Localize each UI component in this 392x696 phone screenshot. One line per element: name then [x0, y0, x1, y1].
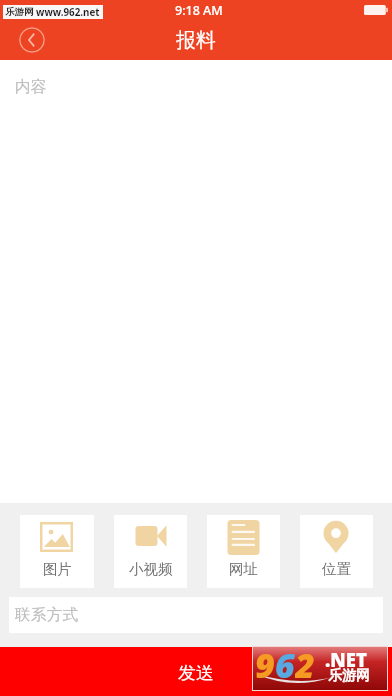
staticText: .NET [325, 647, 367, 672]
staticText: 9 [255, 642, 275, 687]
staticText: 位置 [322, 560, 351, 578]
button[interactable]: Back [19, 27, 45, 53]
button[interactable]: 图片 [20, 515, 94, 588]
button[interactable]: 小视频 [114, 515, 187, 588]
staticText: 乐游网 [5, 6, 34, 18]
button[interactable]: 网址 [207, 515, 280, 588]
staticText: 乐游网 [328, 667, 370, 685]
staticText: 图片 [43, 560, 72, 578]
button[interactable]: 位置 [300, 515, 373, 588]
staticText: www.962.net [36, 6, 100, 19]
staticText: 6 [275, 642, 295, 687]
staticText: 发送 [178, 662, 214, 684]
staticText: 2 [295, 642, 315, 687]
staticText: 报料 [176, 28, 216, 53]
staticText: 网址 [229, 560, 258, 578]
staticText: 9:18 AM [175, 2, 223, 19]
button[interactable]: 联系方式 [9, 597, 383, 633]
staticText: 内容 [15, 77, 47, 97]
staticText: 联系方式 [15, 605, 79, 625]
button[interactable]: 发送 [0, 647, 392, 696]
staticText: 小视频 [129, 560, 173, 578]
